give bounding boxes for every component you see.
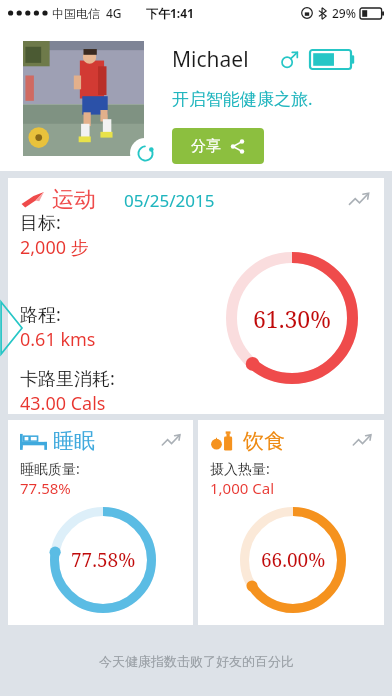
staticText: 路程: xyxy=(20,302,61,327)
button[interactable]: Sync xyxy=(130,138,160,168)
button[interactable]: 睡眠 xyxy=(8,420,193,625)
button[interactable]: 睡眠 trend xyxy=(161,430,183,452)
button[interactable]: Exercise trend xyxy=(348,188,372,212)
staticText: 77.58% xyxy=(20,478,71,498)
staticText: 61.30% xyxy=(253,303,331,334)
staticText: 饮食 xyxy=(243,428,285,454)
staticText: 下午1:41 xyxy=(146,5,194,21)
staticText: 0.61 kms xyxy=(20,327,96,352)
staticText: 卡路里消耗: xyxy=(20,366,115,391)
staticText: 分享 xyxy=(191,137,221,156)
staticText: 运动 xyxy=(52,186,96,214)
staticText: 2,000 步 xyxy=(20,235,89,260)
button[interactable]: 饮食 trend xyxy=(352,430,374,452)
staticText: 目标: xyxy=(20,210,61,235)
button[interactable]: 运动 xyxy=(8,178,384,414)
staticText: 睡眠 xyxy=(53,428,95,454)
staticText: 1,000 Cal xyxy=(210,478,275,498)
staticText: 05/25/2015 xyxy=(124,189,215,212)
other: Gender male xyxy=(281,51,298,68)
other: Battery xyxy=(310,50,354,69)
staticText: 66.00% xyxy=(261,547,326,573)
staticText: 43.00 Cals xyxy=(20,391,106,414)
button[interactable]: 饮食 xyxy=(198,420,384,625)
staticText: 中国电信 xyxy=(52,6,100,21)
staticText: 今天健康指数击败了好友的百分比 xyxy=(99,653,294,669)
button[interactable]: 分享 xyxy=(172,128,264,164)
staticText: Michael xyxy=(172,45,249,74)
staticText: 77.58% xyxy=(71,547,136,573)
staticText: 4G xyxy=(106,5,122,21)
staticText: 睡眠质量: xyxy=(20,459,80,478)
staticText: 29% xyxy=(332,5,356,21)
staticText: 摄入热量: xyxy=(210,459,270,478)
staticText: 开启智能健康之旅. xyxy=(172,87,313,110)
